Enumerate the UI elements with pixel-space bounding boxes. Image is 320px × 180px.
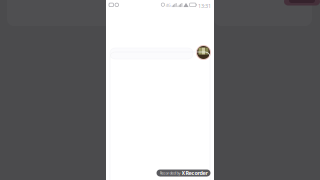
button[interactable]: Profile bbox=[196, 45, 211, 60]
staticText: Recorded by bbox=[159, 170, 180, 176]
staticText: 13:31 bbox=[198, 2, 211, 10]
staticText: XRecorder bbox=[181, 169, 207, 177]
staticText: 4G bbox=[166, 2, 171, 8]
